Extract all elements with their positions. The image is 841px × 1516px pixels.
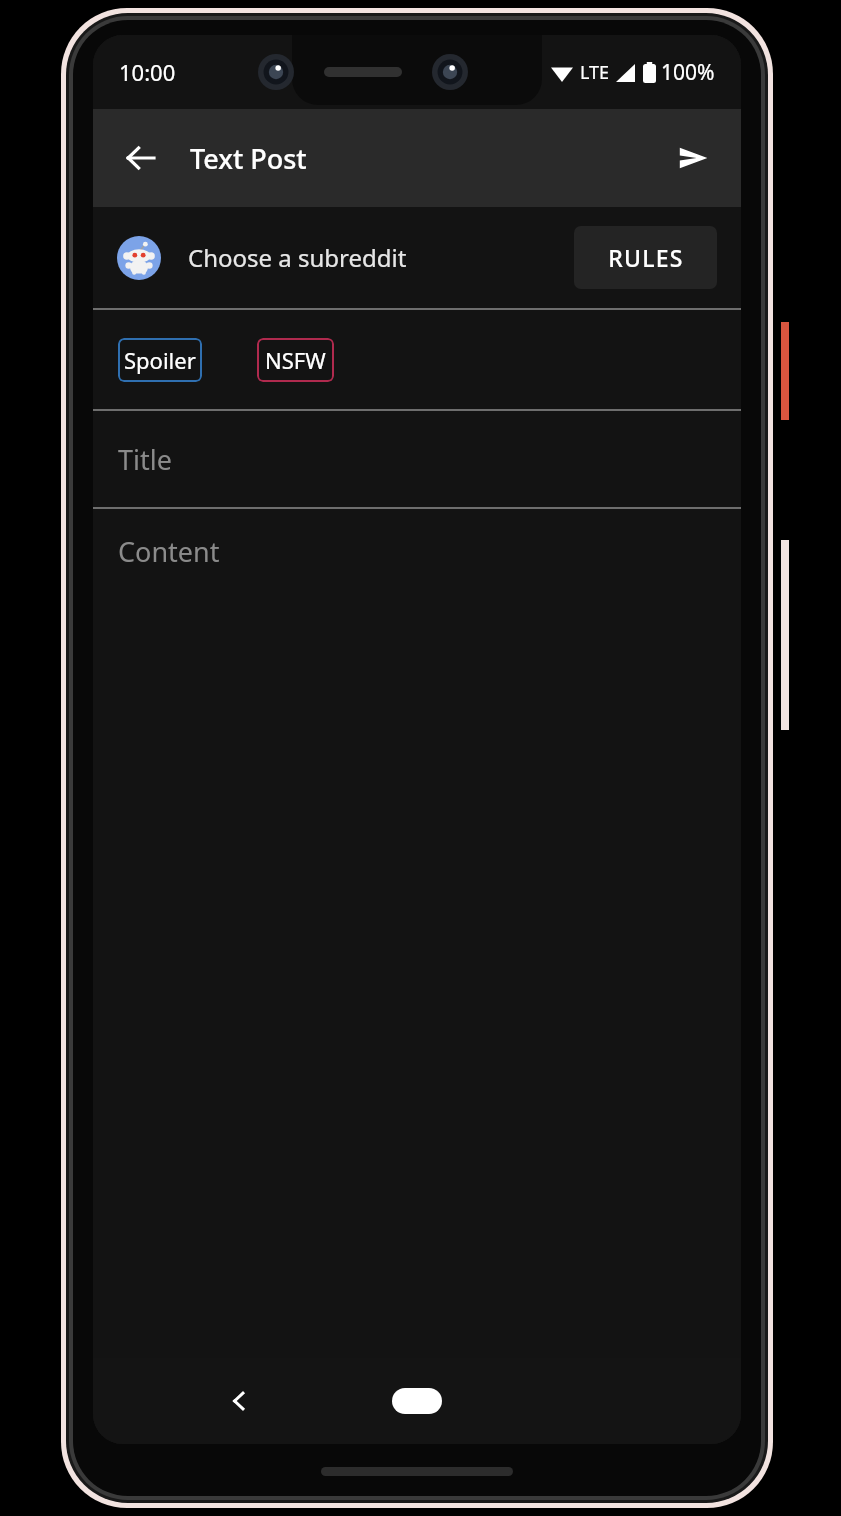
button[interactable]: Home: [392, 1388, 442, 1414]
staticText: 10:00: [119, 57, 176, 87]
button[interactable]: Spoiler: [118, 338, 202, 382]
staticText: Spoiler: [124, 345, 196, 375]
staticText: Title: [118, 441, 172, 478]
button[interactable]: RULES: [574, 226, 717, 289]
button[interactable]: Back: [211, 1373, 267, 1429]
button[interactable]: Content: [93, 509, 741, 1358]
button[interactable]: Title: [93, 411, 741, 507]
staticText: 100%: [661, 58, 715, 87]
button[interactable]: NSFW: [257, 338, 334, 382]
button[interactable]: Send post: [667, 132, 719, 184]
staticText: NSFW: [265, 345, 326, 375]
staticText: LTE: [580, 60, 610, 85]
staticText: Content: [118, 533, 220, 570]
staticText: Choose a subreddit: [188, 241, 407, 274]
staticText: Text Post: [190, 140, 307, 177]
button[interactable]: Back: [115, 133, 165, 183]
staticText: RULES: [608, 242, 684, 273]
button[interactable]: Choose a subreddit: [93, 207, 741, 308]
